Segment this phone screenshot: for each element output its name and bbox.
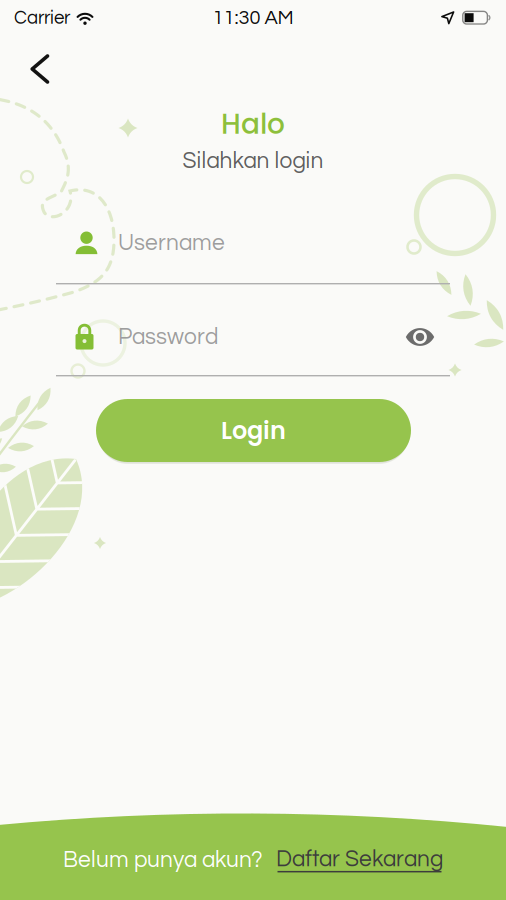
- staticText: Belum punya akun?: [63, 848, 263, 872]
- staticText: Password: [118, 325, 218, 349]
- button[interactable]: Show password: [405, 326, 435, 347]
- staticText: Username: [118, 231, 225, 255]
- staticText: Carrier: [14, 8, 70, 28]
- staticText: 11:30 AM: [212, 8, 293, 28]
- button[interactable]: Login: [96, 399, 411, 462]
- staticText: Silahkan login: [182, 149, 323, 173]
- button[interactable]: Back: [22, 50, 58, 88]
- staticText: Login: [221, 414, 286, 447]
- staticText: Daftar Sekarang: [276, 848, 443, 871]
- button[interactable]: Daftar Sekarang: [276, 848, 443, 872]
- staticText: Halo: [221, 104, 285, 144]
